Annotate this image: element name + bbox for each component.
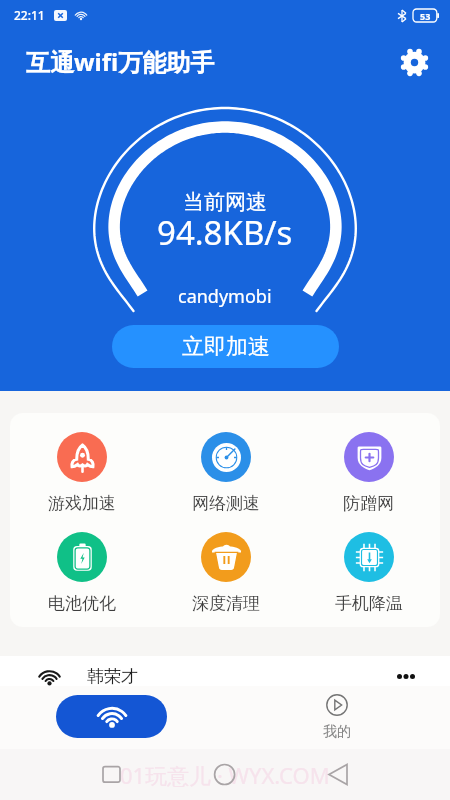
button[interactable]: 防蹭网 [297, 432, 440, 514]
staticText: 立即加速 [182, 333, 270, 361]
button[interactable]: 深度清理 [154, 532, 297, 614]
button[interactable]: 立即加速 [112, 325, 339, 368]
staticText: 游戏加速 [48, 493, 116, 514]
button[interactable]: 我的 [302, 686, 372, 749]
staticText: 22:11 [14, 7, 45, 23]
staticText: 电池优化 [48, 593, 116, 614]
staticText: 我的 [323, 723, 351, 741]
staticText: 01玩意儿 · WYX.COM [120, 760, 330, 790]
button[interactable]: WiFi [56, 695, 167, 738]
staticText: 当前网速 [183, 189, 267, 215]
button[interactable]: 电池优化 [10, 532, 154, 614]
button[interactable]: 韩荣才 [0, 656, 450, 696]
button[interactable]: More options [388, 658, 424, 694]
button[interactable]: Settings [396, 44, 432, 80]
staticText: 防蹭网 [343, 493, 394, 514]
button[interactable]: 游戏加速 [10, 432, 154, 514]
staticText: 94.8KB/s [157, 210, 293, 255]
staticText: 53 [420, 10, 431, 22]
staticText: 深度清理 [192, 593, 260, 614]
staticText: 手机降温 [335, 593, 403, 614]
staticText: 网络测速 [192, 493, 260, 514]
staticText: 韩荣才 [87, 666, 138, 687]
button[interactable]: 网络测速 [154, 432, 297, 514]
staticText: 互通wifi万能助手 [26, 45, 215, 78]
staticText: candymobi [178, 284, 272, 309]
button[interactable]: 手机降温 [297, 532, 440, 614]
